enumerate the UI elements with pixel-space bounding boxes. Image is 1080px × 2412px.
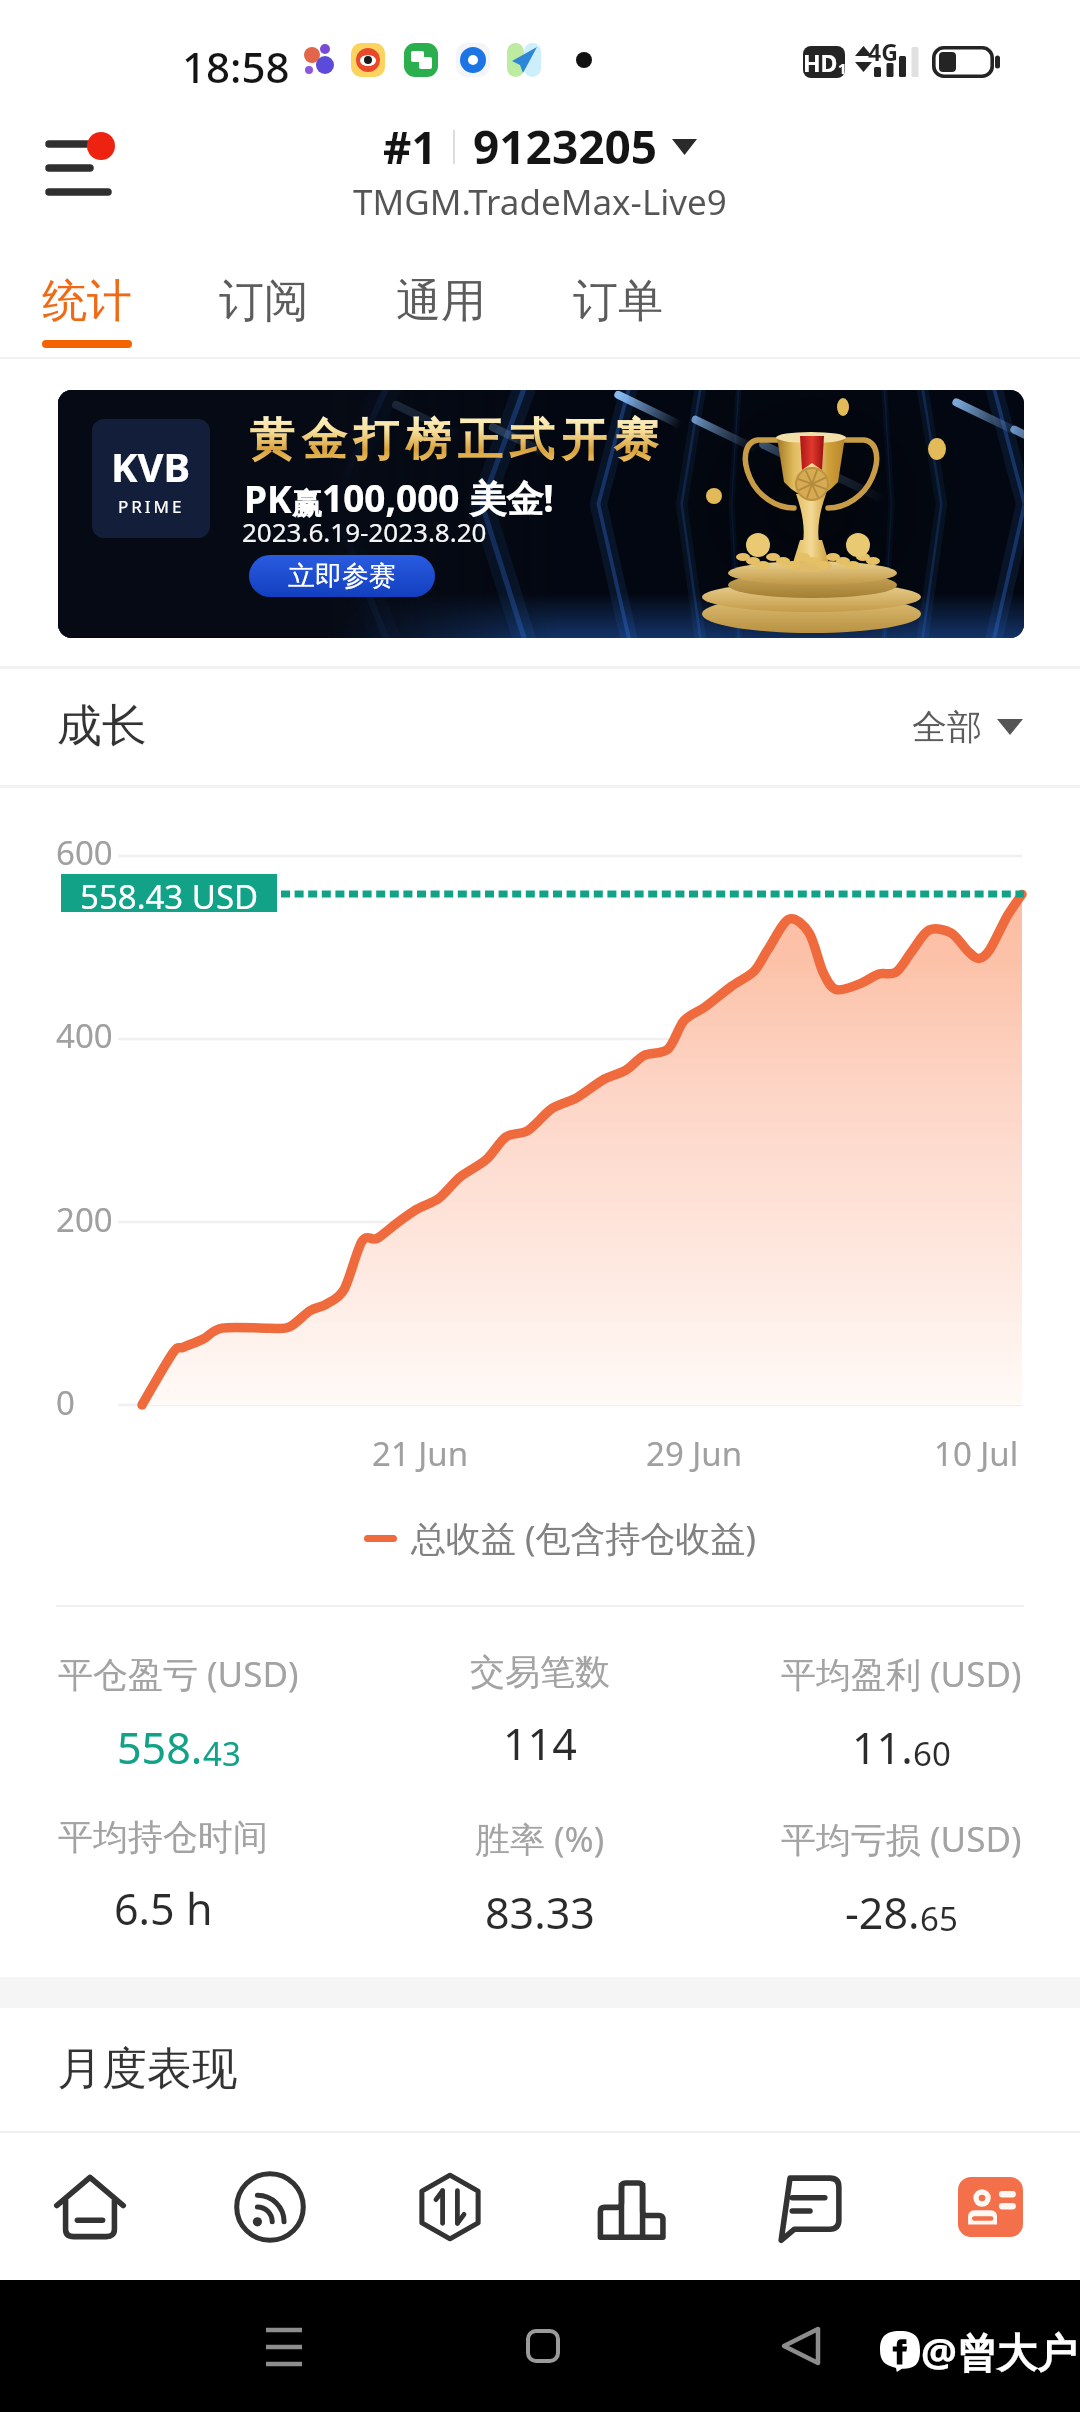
staticText: #1 bbox=[383, 117, 437, 177]
staticText: 2023.6.19-2023.8.20 bbox=[242, 514, 487, 549]
staticText: 统计 bbox=[42, 273, 132, 330]
staticText: 9123205 bbox=[473, 115, 658, 178]
button[interactable]: 通用 bbox=[376, 245, 506, 357]
staticText: 平均持仓时间 bbox=[58, 1815, 268, 1859]
staticText: 114 bbox=[503, 1714, 577, 1773]
staticText: 65 bbox=[920, 1896, 958, 1941]
staticText: 558. bbox=[117, 1718, 203, 1777]
staticText: 交易笔数 bbox=[470, 1650, 610, 1694]
staticText: 月度表现 bbox=[57, 2041, 237, 2098]
staticText: 平均亏损 (USD) bbox=[781, 1815, 1022, 1863]
button[interactable]: 全部 bbox=[912, 705, 1023, 749]
button[interactable]: 统计 bbox=[22, 245, 152, 357]
staticText: 600 bbox=[56, 830, 113, 875]
staticText: @曾大户 bbox=[921, 2324, 1077, 2379]
staticText: 平均盈利 (USD) bbox=[781, 1650, 1022, 1698]
staticText: 6.5 h bbox=[114, 1879, 213, 1938]
button[interactable]: Statistics bbox=[540, 2133, 720, 2280]
staticText: 黄金打榜正式开赛 bbox=[246, 412, 662, 469]
button[interactable]: 立即参赛 bbox=[249, 555, 435, 597]
button[interactable]: KVB bbox=[58, 390, 1024, 638]
staticText: 平仓盈亏 (USD) bbox=[58, 1650, 299, 1698]
button[interactable]: Home bbox=[483, 2286, 603, 2406]
button[interactable]: Messages bbox=[720, 2133, 900, 2280]
staticText: 558.43 USD bbox=[80, 874, 259, 912]
staticText: 胜率 (%) bbox=[475, 1815, 605, 1863]
staticText: 总收益 (包含持仓收益) bbox=[411, 1514, 757, 1562]
staticText: 订单 bbox=[573, 273, 663, 330]
staticText: 200 bbox=[56, 1197, 113, 1242]
staticText: 订阅 bbox=[219, 273, 309, 330]
button[interactable]: 订阅 bbox=[199, 245, 329, 357]
staticText: 29 Jun bbox=[646, 1431, 743, 1476]
button[interactable]: 订单 bbox=[553, 245, 683, 357]
staticText: -28. bbox=[845, 1883, 920, 1942]
button[interactable]: Back bbox=[741, 2286, 861, 2406]
button[interactable]: Signals bbox=[180, 2133, 360, 2280]
staticText: 100,000 美金! bbox=[322, 472, 554, 523]
staticText: 43 bbox=[203, 1731, 241, 1776]
button[interactable]: Recent apps bbox=[224, 2286, 344, 2406]
staticText: TMGM.TradeMax-Live9 bbox=[353, 178, 727, 226]
staticText: HD bbox=[803, 47, 838, 78]
staticText: 通用 bbox=[396, 273, 486, 330]
button[interactable]: Home bbox=[0, 2133, 180, 2280]
staticText: 11. bbox=[852, 1718, 913, 1777]
staticText: 10 Jul bbox=[934, 1431, 1019, 1476]
staticText: 1 bbox=[838, 58, 845, 78]
staticText: 立即参赛 bbox=[288, 559, 396, 593]
staticText: 4G bbox=[868, 36, 898, 67]
staticText: PK bbox=[244, 473, 292, 523]
button[interactable]: Trade bbox=[360, 2133, 540, 2280]
staticText: 400 bbox=[56, 1013, 113, 1058]
staticText: 0 bbox=[56, 1380, 75, 1425]
staticText: 赢 bbox=[292, 485, 322, 523]
button[interactable]: Menu bbox=[10, 112, 130, 222]
staticText: 60 bbox=[913, 1731, 951, 1776]
button[interactable]: #1 bbox=[0, 115, 1080, 178]
staticText: 18:58 bbox=[182, 38, 290, 95]
staticText: 成长 bbox=[57, 698, 147, 755]
staticText: PRIME bbox=[118, 495, 185, 518]
staticText: KVB bbox=[111, 439, 191, 493]
button[interactable]: Profile bbox=[900, 2133, 1080, 2280]
staticText: 全部 bbox=[912, 705, 982, 749]
staticText: 21 Jun bbox=[372, 1431, 469, 1476]
staticText: 83.33 bbox=[485, 1883, 595, 1942]
